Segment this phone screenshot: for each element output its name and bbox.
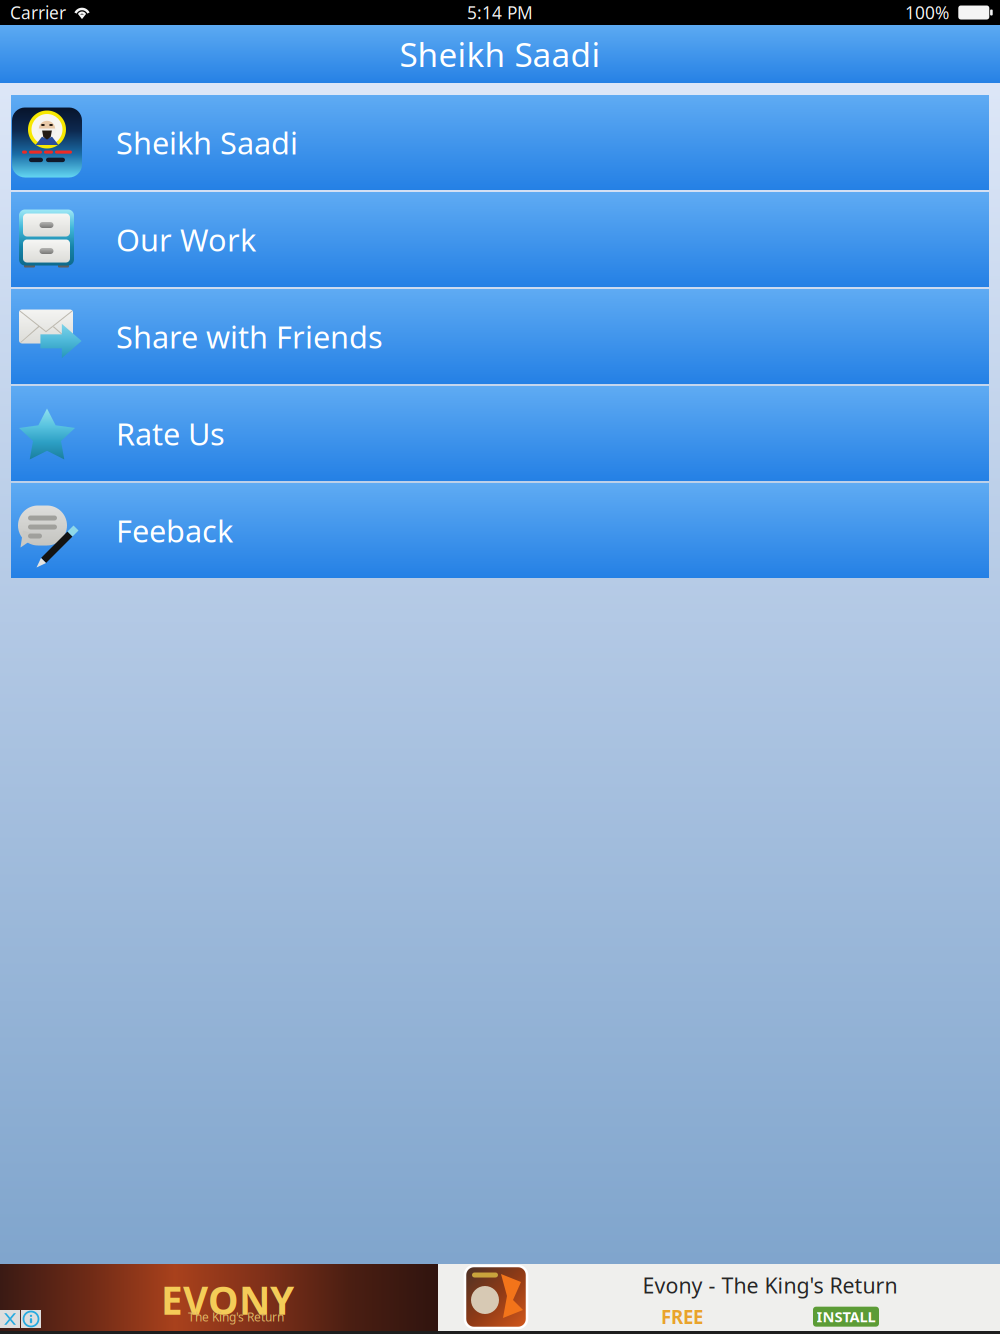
staticText: Feeback (116, 510, 233, 551)
button[interactable]: Our Work (11, 192, 989, 287)
staticText: Sheikh Saadi (399, 32, 600, 76)
button[interactable]: Share with Friends (11, 289, 989, 384)
staticText: Share with Friends (116, 316, 383, 357)
button[interactable]: Close ad (0, 1310, 20, 1328)
staticText: Carrier (10, 1, 66, 24)
button[interactable]: Sheikh Saadi (11, 95, 989, 190)
staticText: The King's Return (188, 1309, 284, 1325)
staticText: Rate Us (116, 413, 225, 454)
button[interactable]: EVONY (0, 1264, 1000, 1331)
button[interactable]: Feeback (11, 483, 989, 578)
staticText: INSTALL (816, 1307, 875, 1326)
staticText: Evony - The King's Return (642, 1271, 897, 1299)
staticText: FREE (661, 1304, 703, 1329)
button[interactable]: Rate Us (11, 386, 989, 481)
staticText: 5:14 PM (467, 1, 533, 24)
staticText: Our Work (116, 219, 256, 260)
button[interactable]: Ad information (21, 1310, 41, 1328)
staticText: Sheikh Saadi (116, 122, 298, 163)
staticText: EVONY (161, 1274, 294, 1325)
staticText: 100% (905, 1, 949, 24)
